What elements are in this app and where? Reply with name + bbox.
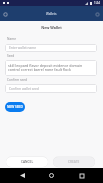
staticText: Enter wallet name <box>9 46 37 50</box>
staticText: New Wallet <box>0 25 103 30</box>
staticText: CREATE <box>68 160 80 164</box>
staticText: Name <box>7 37 16 41</box>
button[interactable]: Navigate up <box>0 9 10 19</box>
button[interactable]: More options <box>93 10 101 18</box>
button[interactable]: Back <box>15 168 30 183</box>
button[interactable]: Enter wallet name <box>5 44 97 52</box>
button[interactable]: skill leopard flavor deposit evidence do… <box>5 60 97 76</box>
staticText: Confirm seed <box>7 78 28 82</box>
staticText: skill leopard flavor deposit evidence do… <box>8 63 94 72</box>
staticText: Wallets <box>46 12 57 16</box>
button[interactable]: NEW SEED <box>5 102 25 112</box>
button[interactable]: Home <box>44 168 59 183</box>
staticText: Seed <box>7 54 15 58</box>
button[interactable]: Confirm wallet seed <box>5 84 97 93</box>
staticText: Confirm wallet seed <box>9 87 39 91</box>
button[interactable]: CREATE <box>53 157 95 167</box>
staticText: NEW SEED <box>7 105 23 109</box>
button[interactable]: CANCEL <box>6 157 48 167</box>
staticText: CANCEL <box>21 160 34 164</box>
staticText: 1:24 <box>94 1 100 5</box>
button[interactable]: Recent apps <box>74 168 89 183</box>
